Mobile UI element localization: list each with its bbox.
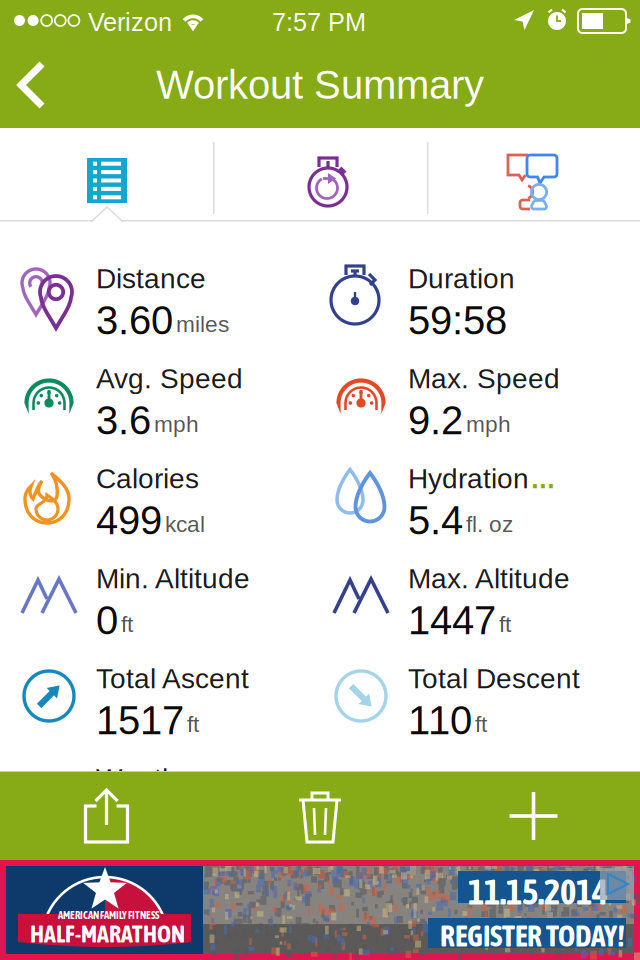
staticText: REGISTER TODAY! [440, 919, 625, 953]
staticText: Distance [96, 263, 206, 294]
staticText: 3.6 [96, 398, 151, 443]
staticText: Verizon [88, 8, 172, 36]
staticText: Workout Summary [156, 63, 484, 107]
staticText: 1517 [96, 698, 184, 743]
staticText: Min. Altitude [96, 563, 250, 594]
staticText: Max. Altitude [408, 563, 570, 594]
staticText: ft [475, 711, 487, 737]
staticText: 1447 [408, 598, 496, 643]
button[interactable]: Add [427, 772, 640, 860]
staticText: AMERICAN FAMILY FITNESS [58, 909, 159, 921]
staticText: fl. oz [466, 511, 513, 537]
button[interactable]: Delete [213, 772, 427, 860]
staticText: Max. Speed [408, 363, 560, 394]
staticText: Total Ascent [96, 663, 249, 694]
button[interactable]: Share [0, 772, 213, 860]
staticText: miles [176, 311, 229, 337]
staticText: HALF-MARATHON [30, 920, 185, 947]
staticText: Avg. Speed [96, 363, 243, 394]
staticText: kcal [165, 511, 205, 537]
staticText: ft [499, 611, 511, 637]
staticText: Hydration [408, 463, 529, 494]
staticText: 0 [96, 598, 118, 643]
staticText: mph [466, 411, 511, 437]
staticText: Duration [408, 263, 515, 294]
staticText: Weather [96, 763, 203, 794]
staticText: ... [531, 463, 555, 494]
button[interactable]: Back [0, 42, 72, 128]
button[interactable]: Social [427, 128, 640, 221]
button[interactable]: Splits [213, 128, 427, 221]
staticText: Calories [96, 463, 199, 494]
button[interactable]: Summary [0, 128, 213, 221]
staticText: Total Descent [408, 663, 580, 694]
staticText: 3.60 [96, 298, 173, 343]
staticText: 11.15.2014 [468, 872, 608, 912]
staticText: ft [121, 611, 133, 637]
staticText: 5.4 [408, 498, 463, 543]
staticText: 499 [96, 498, 162, 543]
staticText: 59:58 [408, 298, 507, 343]
staticText: 110 [408, 698, 472, 743]
staticText: 7:57 PM [272, 8, 366, 36]
staticText: mph [154, 411, 199, 437]
staticText: 9.2 [408, 398, 463, 443]
staticText: ft [187, 711, 199, 737]
